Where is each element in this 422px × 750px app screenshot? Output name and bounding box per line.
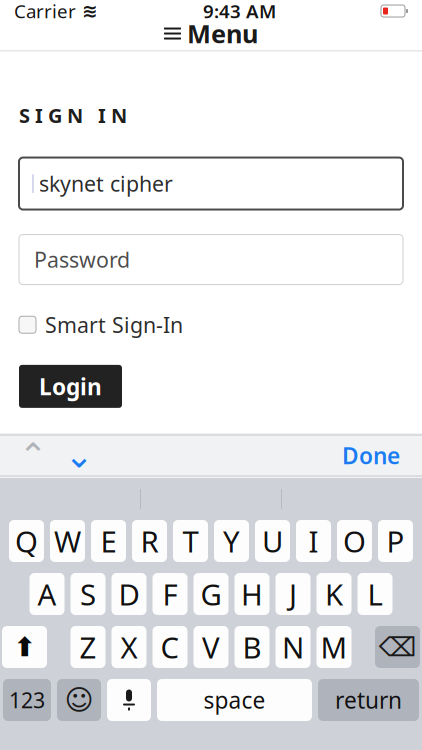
- staticText: F: [162, 574, 177, 613]
- button[interactable]: Shift: [2, 626, 47, 668]
- staticText: S I G N I N: [19, 102, 127, 129]
- staticText: 9:43 AM: [203, 0, 276, 23]
- button[interactable]: Next field: [56, 435, 102, 475]
- button[interactable]: O: [337, 520, 372, 562]
- button[interactable]: 123: [3, 679, 51, 721]
- button[interactable]: G: [193, 573, 228, 615]
- staticText: Login: [39, 371, 102, 401]
- button[interactable]: N: [275, 626, 310, 668]
- button[interactable]: J: [275, 573, 310, 615]
- staticText: T: [182, 521, 198, 560]
- staticText: N: [282, 627, 304, 666]
- staticText: Password: [34, 245, 130, 274]
- staticText: 123: [9, 686, 45, 714]
- staticText: ⌄: [64, 436, 93, 475]
- staticText: skynet cipher: [39, 169, 173, 198]
- button[interactable]: W: [50, 520, 85, 562]
- button[interactable]: Login: [19, 365, 122, 408]
- staticText: Z: [79, 627, 96, 666]
- button[interactable]: F: [152, 573, 187, 615]
- staticText: A: [37, 574, 56, 613]
- staticText: X: [120, 627, 137, 666]
- staticText: O: [343, 521, 366, 560]
- staticText: E: [100, 521, 116, 560]
- staticText: C: [160, 627, 179, 666]
- staticText: Menu: [187, 17, 258, 50]
- button[interactable]: M: [316, 626, 351, 668]
- button[interactable]: C: [152, 626, 187, 668]
- button[interactable]: X: [111, 626, 146, 668]
- staticText: B: [242, 627, 261, 666]
- button[interactable]: Menu: [156, 17, 266, 50]
- staticText: Smart Sign-In: [45, 311, 183, 339]
- staticText: Done: [342, 440, 400, 470]
- button[interactable]: Previous field: [10, 435, 56, 475]
- staticText: ⌃: [18, 436, 47, 475]
- staticText: M: [320, 627, 347, 666]
- button[interactable]: B: [234, 626, 269, 668]
- staticText: ≋: [82, 0, 98, 22]
- staticText: D: [118, 574, 139, 613]
- staticText: return: [335, 685, 402, 715]
- staticText: L: [367, 574, 382, 613]
- staticText: ☺: [64, 684, 93, 716]
- button[interactable]: Delete: [375, 626, 420, 668]
- staticText: space: [203, 685, 265, 715]
- button[interactable]: Q: [9, 520, 44, 562]
- button[interactable]: H: [234, 573, 269, 615]
- button[interactable]: Done: [330, 435, 412, 475]
- staticText: Q: [15, 521, 38, 560]
- staticText: S: [80, 574, 96, 613]
- staticText: W: [54, 521, 81, 560]
- staticText: I: [308, 521, 318, 560]
- button[interactable]: L: [357, 573, 392, 615]
- button[interactable]: P: [378, 520, 413, 562]
- button[interactable]: V: [193, 626, 228, 668]
- button[interactable]: K: [316, 573, 351, 615]
- button[interactable]: Y: [214, 520, 249, 562]
- button[interactable]: return: [318, 679, 419, 721]
- staticText: R: [140, 521, 158, 560]
- button[interactable]: D: [111, 573, 146, 615]
- staticText: ⬆: [13, 632, 35, 662]
- button[interactable]: Dictation: [107, 679, 151, 721]
- button[interactable]: Emoji: [57, 679, 101, 721]
- staticText: V: [202, 627, 220, 666]
- button[interactable]: S: [70, 573, 105, 615]
- staticText: U: [262, 521, 283, 560]
- button[interactable]: A: [29, 573, 64, 615]
- button[interactable]: U: [255, 520, 290, 562]
- staticText: Carrier: [14, 0, 76, 23]
- staticText: Y: [223, 521, 240, 560]
- staticText: P: [386, 521, 404, 560]
- staticText: ⌫: [378, 632, 416, 662]
- staticText: H: [241, 574, 263, 613]
- staticText: K: [325, 574, 343, 613]
- button[interactable]: T: [173, 520, 208, 562]
- staticText: J: [289, 574, 297, 613]
- button[interactable]: E: [91, 520, 126, 562]
- button[interactable]: I: [296, 520, 331, 562]
- button[interactable]: Z: [70, 626, 105, 668]
- staticText: G: [200, 574, 221, 613]
- button[interactable]: R: [132, 520, 167, 562]
- button[interactable]: Smart Sign-In: [19, 307, 183, 343]
- button[interactable]: space: [157, 679, 312, 721]
